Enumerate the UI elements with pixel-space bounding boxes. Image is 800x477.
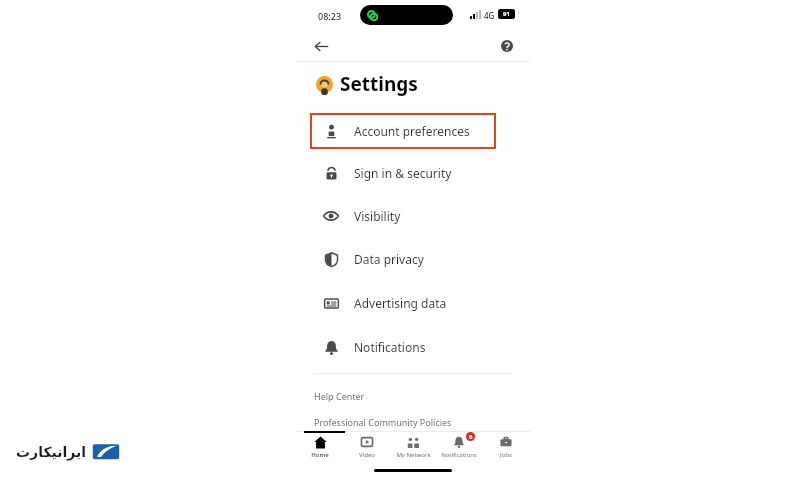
staticText: Home bbox=[311, 451, 329, 459]
button[interactable]: Help Center bbox=[314, 387, 365, 405]
staticText: Settings bbox=[340, 71, 418, 97]
button[interactable]: 6 bbox=[437, 434, 481, 459]
staticText: Sign in & security bbox=[354, 165, 452, 181]
button[interactable]: Visibility bbox=[296, 199, 530, 233]
button[interactable]: Video bbox=[345, 434, 389, 459]
staticText: 6 bbox=[469, 433, 473, 441]
staticText: 08:23 bbox=[318, 10, 342, 22]
staticText: 4G bbox=[484, 10, 495, 21]
staticText: Account preferences bbox=[354, 123, 470, 139]
staticText: 91 bbox=[503, 10, 510, 18]
staticText: ایرانیکارت bbox=[16, 444, 87, 460]
button[interactable]: My Network bbox=[391, 434, 435, 459]
button[interactable]: Advertising data bbox=[296, 286, 530, 320]
button[interactable]: Notifications bbox=[296, 330, 530, 364]
staticText: Visibility bbox=[354, 208, 401, 224]
button[interactable]: Home bbox=[298, 434, 342, 459]
button[interactable]: Professional Community Policies bbox=[314, 413, 452, 431]
staticText: Data privacy bbox=[354, 251, 424, 267]
staticText: Advertising data bbox=[354, 295, 447, 311]
button[interactable]: Back bbox=[306, 31, 336, 61]
button[interactable]: Data privacy bbox=[296, 242, 530, 276]
staticText: Help Center bbox=[314, 390, 365, 402]
staticText: Video bbox=[359, 451, 375, 459]
staticText: Professional Community Policies bbox=[314, 416, 452, 428]
staticText: Notifications bbox=[354, 339, 426, 355]
button[interactable]: Help bbox=[492, 31, 522, 61]
staticText: Notifications bbox=[441, 451, 477, 459]
button[interactable]: Sign in & security bbox=[296, 156, 530, 190]
button[interactable]: Account preferences bbox=[310, 113, 496, 149]
staticText: Jobs bbox=[500, 451, 512, 459]
button[interactable]: Jobs bbox=[484, 434, 528, 459]
staticText: My Network bbox=[396, 451, 431, 459]
